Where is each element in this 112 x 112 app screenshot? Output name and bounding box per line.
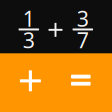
staticText: 3: [23, 26, 35, 54]
staticText: 7: [77, 26, 89, 54]
button[interactable]: Add: [0, 53, 56, 112]
staticText: 3: [77, 4, 89, 32]
button[interactable]: Equals: [56, 53, 112, 112]
staticText: 1: [23, 4, 35, 32]
